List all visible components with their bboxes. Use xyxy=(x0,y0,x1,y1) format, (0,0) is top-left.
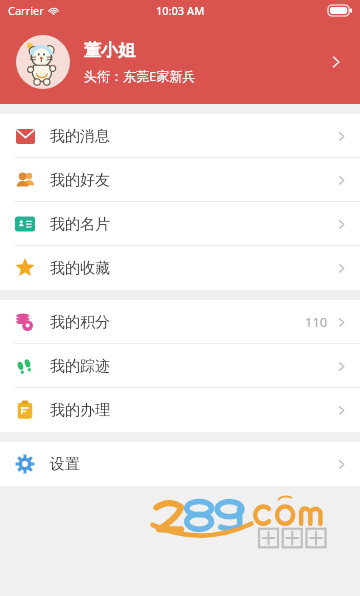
staticText: 我的消息 xyxy=(50,127,110,146)
staticText: 设置 xyxy=(50,455,80,474)
staticText: 我的名片 xyxy=(50,215,110,234)
staticText: 董小姐 xyxy=(84,40,135,61)
button[interactable]: 我的好友 xyxy=(0,158,360,202)
staticText: 我的收藏 xyxy=(50,259,110,278)
staticText: 10:03 AM xyxy=(156,3,205,18)
staticText: 我的积分 xyxy=(50,313,110,332)
button[interactable]: 我的办理 xyxy=(0,388,360,432)
staticText: 我的好友 xyxy=(50,171,110,190)
button[interactable]: 我的积分 xyxy=(0,300,360,344)
button[interactable]: 我的收藏 xyxy=(0,246,360,290)
button[interactable]: 设置 xyxy=(0,442,360,486)
staticText: 我的办理 xyxy=(50,401,110,420)
button[interactable]: 我的踪迹 xyxy=(0,344,360,388)
other: Profile details xyxy=(328,54,344,70)
button[interactable]: 董小姐 xyxy=(0,20,360,104)
button[interactable]: 我的消息 xyxy=(0,114,360,158)
staticText: Carrier xyxy=(8,3,44,18)
staticText: 110 xyxy=(305,313,328,331)
button[interactable]: 我的名片 xyxy=(0,202,360,246)
staticText: 头衔：东莞E家新兵 xyxy=(84,67,196,85)
staticText: 我的踪迹 xyxy=(50,357,110,376)
